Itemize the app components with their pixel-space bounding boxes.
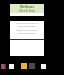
staticText: Lorem ipsum dolor sit amet consectetur <box>13 22 41 28</box>
staticText: Mind & Body <box>19 9 35 13</box>
button[interactable] <box>1 64 6 69</box>
staticText: adipiscing elit sed do eiusmod tempor <box>13 29 41 35</box>
staticText: Wellness <box>20 5 34 9</box>
